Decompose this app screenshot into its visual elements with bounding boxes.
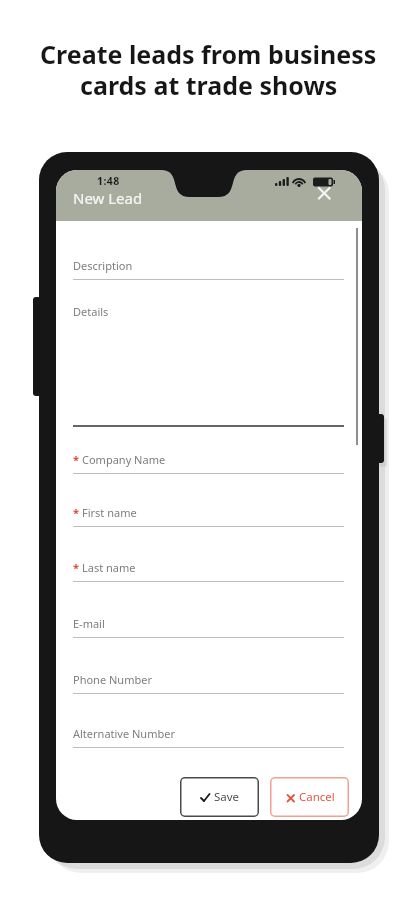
staticText: E-mail: [73, 616, 105, 631]
staticText: New Lead: [73, 188, 143, 208]
button[interactable]: [312, 181, 336, 205]
staticText: 1:48: [97, 174, 120, 188]
staticText: Create leads from business: [40, 37, 377, 71]
button[interactable]: Cancel: [270, 777, 349, 817]
staticText: Last name: [82, 560, 136, 575]
staticText: Details: [73, 304, 109, 319]
button[interactable]: Save: [180, 777, 259, 817]
staticText: First name: [82, 505, 137, 520]
staticText: Company Name: [82, 452, 166, 467]
staticText: cards at trade shows: [80, 68, 338, 102]
staticText: *: [73, 452, 82, 467]
staticText: *: [73, 505, 82, 520]
staticText: Phone Number: [73, 672, 152, 687]
staticText: Save: [214, 789, 240, 805]
staticText: Cancel: [299, 789, 335, 805]
staticText: *: [73, 560, 82, 575]
staticText: Alternative Number: [73, 726, 175, 741]
staticText: Description: [73, 258, 133, 273]
